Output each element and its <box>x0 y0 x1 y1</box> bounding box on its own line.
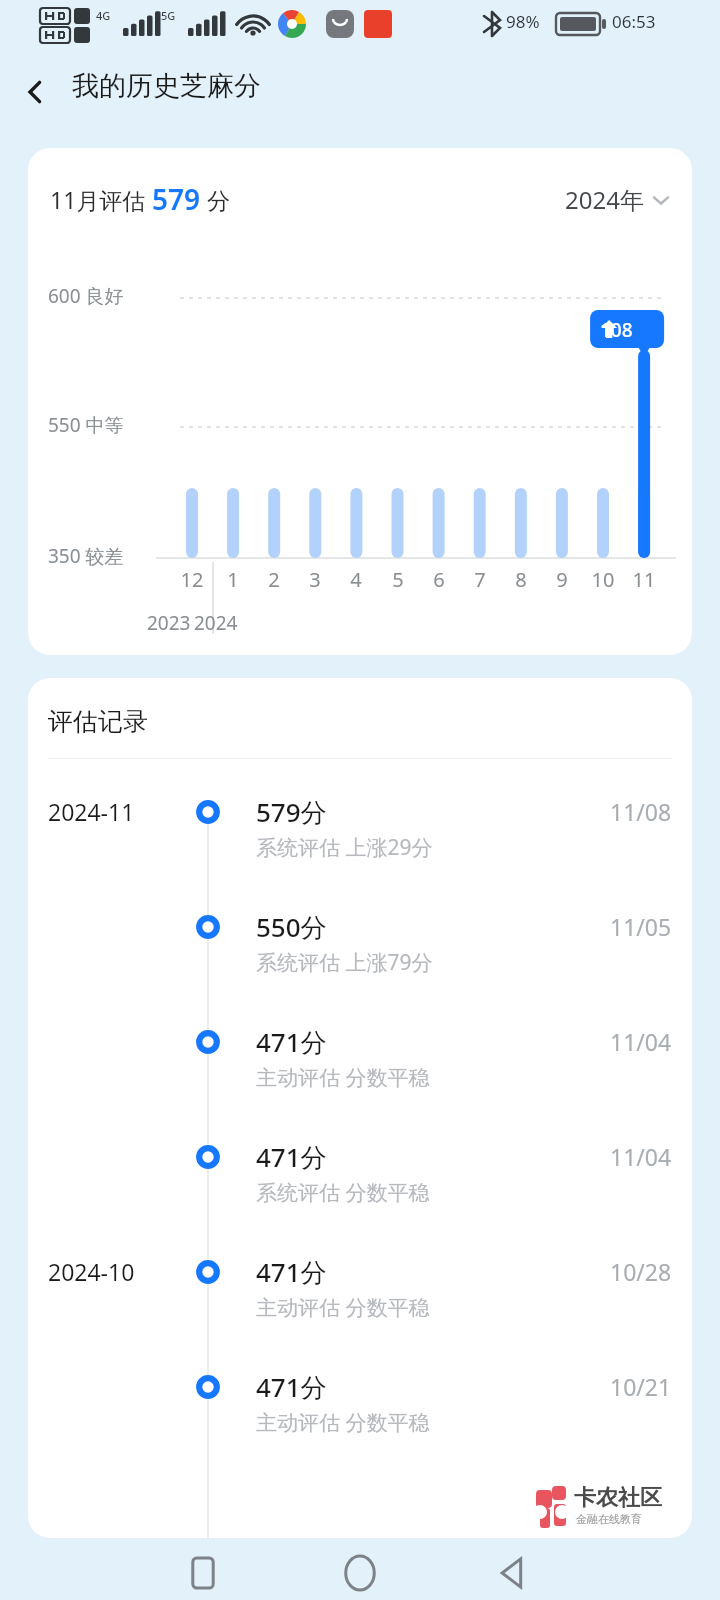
staticText: 471分 <box>256 1254 327 1290</box>
staticText: 8 <box>501 566 541 593</box>
staticText: 3 <box>295 566 335 593</box>
staticText: 我的历史芝麻分 <box>72 69 261 103</box>
button[interactable] <box>28 1117 692 1232</box>
staticText: 108 <box>600 317 633 343</box>
staticText: 11/04 <box>610 1141 672 1172</box>
staticText: 分 <box>201 184 230 215</box>
staticText: 卡农社区 <box>574 1484 662 1512</box>
staticText: 系统评估 分数平稳 <box>256 1178 430 1207</box>
staticText: 7 <box>460 566 500 593</box>
staticText: 4 <box>336 566 376 593</box>
button[interactable] <box>28 1347 692 1462</box>
staticText: 350 较差 <box>48 543 124 569</box>
staticText: 主动评估 分数平稳 <box>256 1408 430 1437</box>
staticText: 550 中等 <box>48 412 124 438</box>
staticText: 2024-10 <box>48 1256 135 1287</box>
staticText: 1 <box>213 566 253 593</box>
staticText: 2024-11 <box>48 796 135 827</box>
staticText: 471分 <box>256 1139 327 1175</box>
button[interactable]: Recent apps <box>168 1538 238 1600</box>
staticText: 600 良好 <box>48 283 124 309</box>
staticText: 98% <box>506 10 540 33</box>
staticText: 6 <box>419 566 459 593</box>
button[interactable]: 2024年 <box>565 183 672 216</box>
staticText: 2024 <box>194 610 238 636</box>
staticText: 11/05 <box>610 911 672 942</box>
button[interactable]: Back <box>478 1538 548 1600</box>
staticText: 471分 <box>256 1024 327 1060</box>
staticText: 10 <box>583 566 623 593</box>
staticText: 评估记录 <box>48 706 148 737</box>
staticText: 12 <box>172 566 212 593</box>
button[interactable] <box>28 887 692 1002</box>
staticText: 系统评估 上涨29分 <box>256 833 433 862</box>
staticText: 2024年 <box>565 183 644 216</box>
button[interactable]: Back <box>14 70 58 114</box>
staticText: 06:53 <box>612 10 656 33</box>
staticText: 主动评估 分数平稳 <box>256 1293 430 1322</box>
staticText: 4G <box>96 8 111 23</box>
staticText: 11月评估 <box>50 184 152 215</box>
button[interactable] <box>28 1002 692 1117</box>
staticText: 579 <box>152 180 201 218</box>
staticText: 2023 <box>147 610 191 636</box>
staticText: 5G <box>161 8 176 23</box>
button[interactable] <box>28 772 692 887</box>
staticText: 11 <box>624 566 664 593</box>
staticText: 550分 <box>256 909 327 945</box>
staticText: 主动评估 分数平稳 <box>256 1063 430 1092</box>
staticText: 10/21 <box>610 1371 672 1402</box>
staticText: 10/28 <box>610 1256 672 1287</box>
staticText: 2 <box>254 566 294 593</box>
button[interactable] <box>28 1232 692 1347</box>
staticText: 5 <box>378 566 418 593</box>
staticText: 11/08 <box>610 796 672 827</box>
button[interactable]: Home <box>325 1538 395 1600</box>
staticText: 579分 <box>256 794 327 830</box>
staticText: 11/04 <box>610 1026 672 1057</box>
staticText: 系统评估 上涨79分 <box>256 948 433 977</box>
staticText: 471分 <box>256 1369 327 1405</box>
staticText: 金融在线教育 <box>576 1512 642 1526</box>
staticText: 9 <box>542 566 582 593</box>
